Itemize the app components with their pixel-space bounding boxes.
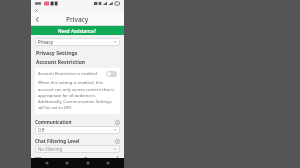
button[interactable]: Recents: [62, 158, 72, 168]
staticText: Who can message me?: [35, 156, 87, 158]
staticText: When this setting is enabled, this accou…: [38, 80, 117, 110]
button[interactable]: Need Assistance?: [31, 26, 124, 35]
button[interactable]: Menu: [103, 158, 113, 168]
staticText: Communication: [35, 119, 72, 125]
button[interactable]: Off: [35, 126, 120, 134]
staticText: Off: [38, 127, 113, 133]
staticText: Privacy: [38, 39, 113, 45]
staticText: Need Assistance?: [58, 28, 97, 34]
button[interactable]: Account Restriction toggle: [106, 71, 117, 77]
button[interactable]: Home: [42, 158, 52, 168]
button[interactable]: More info about Chat Filtering Level: [114, 138, 120, 144]
staticText: Privacy: [66, 15, 89, 24]
button[interactable]: Back: [33, 15, 42, 24]
button[interactable]: No Filtering: [35, 145, 120, 153]
staticText: Account Restriction: [36, 59, 86, 66]
staticText: Chat Filtering Level: [35, 138, 80, 144]
button[interactable]: Back: [83, 158, 93, 168]
button[interactable]: Close: [34, 8, 39, 13]
staticText: No Filtering: [38, 146, 113, 152]
staticText: Account Restriction is enabled: [38, 71, 106, 77]
button[interactable]: More info about Communication: [114, 119, 120, 125]
button[interactable]: More info about Who can message me?: [114, 156, 120, 158]
button[interactable]: Account Restriction is enabled: [38, 70, 117, 78]
staticText: Privacy Settings: [36, 49, 78, 56]
button[interactable]: Privacy: [35, 38, 120, 46]
